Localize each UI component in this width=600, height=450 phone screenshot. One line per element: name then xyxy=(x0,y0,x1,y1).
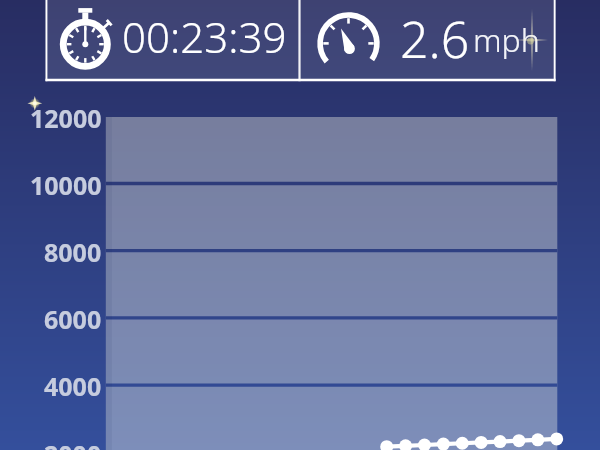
staticText: 00:23:39 xyxy=(122,8,287,65)
staticText: mph xyxy=(473,18,540,62)
button[interactable]: Elapsed time 00:23:39 xyxy=(46,0,301,81)
button[interactable]: Speed 2.6 mph xyxy=(301,0,556,81)
staticText: 8000 xyxy=(44,235,102,269)
staticText: 4000 xyxy=(44,369,102,403)
button[interactable]: Daily step count chart xyxy=(106,117,558,450)
staticText: 12000 xyxy=(30,101,102,135)
staticText: 6000 xyxy=(44,302,102,336)
staticText: 10000 xyxy=(30,168,102,202)
staticText: 2000 xyxy=(44,437,102,450)
staticText: 2.6 xyxy=(400,5,470,73)
